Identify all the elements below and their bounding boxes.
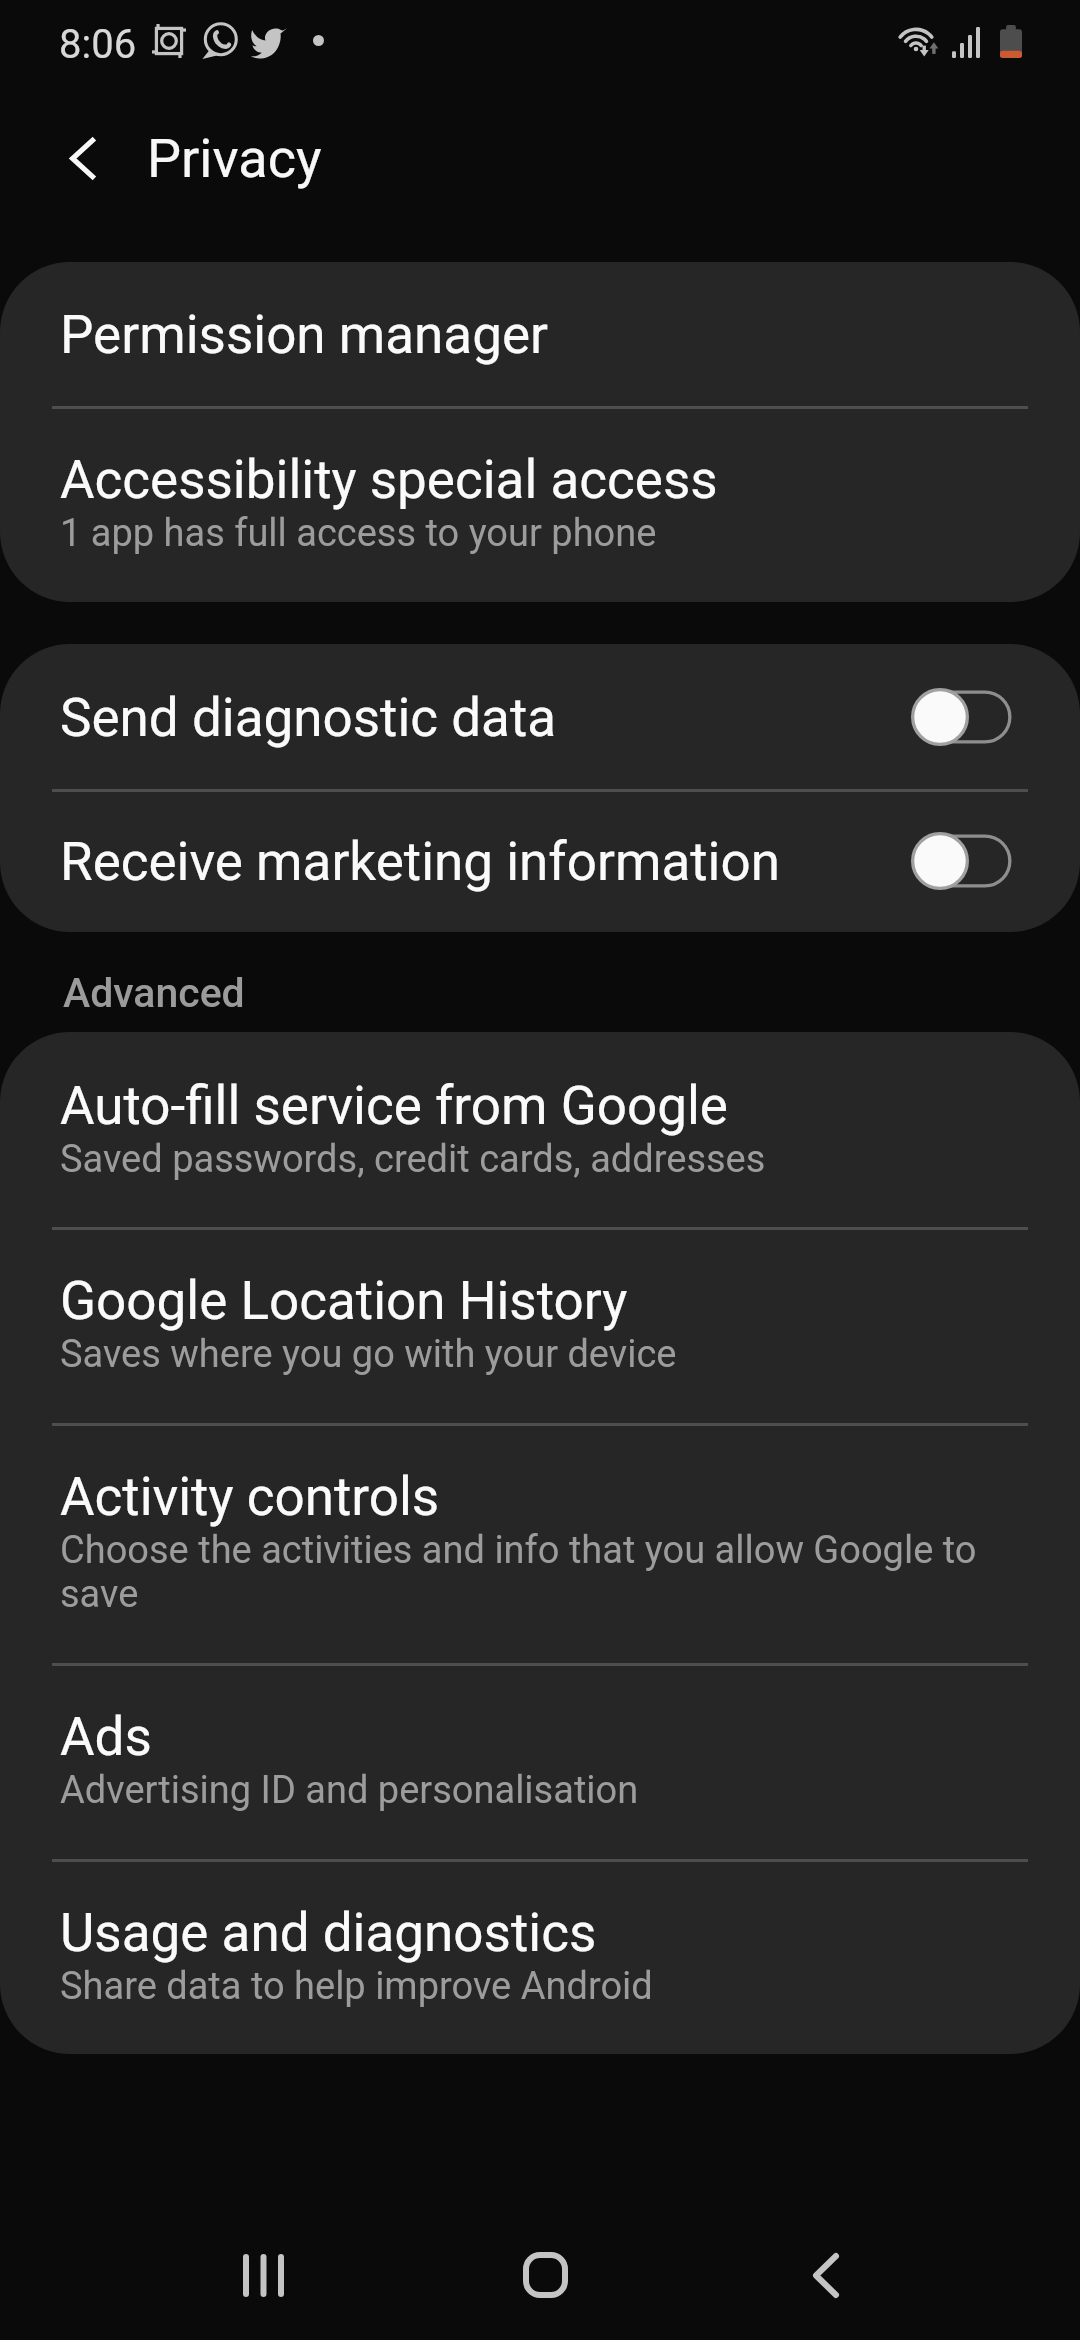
button[interactable]: Usage and diagnostics bbox=[0, 1859, 1080, 2054]
staticText: Usage and diagnostics bbox=[60, 1900, 597, 1964]
staticText: Send diagnostic data bbox=[60, 685, 911, 749]
button[interactable]: Google Location History bbox=[0, 1227, 1080, 1423]
button[interactable]: Ads bbox=[0, 1663, 1080, 1859]
staticText: 1 app has full access to your phone bbox=[60, 511, 657, 555]
button[interactable]: Auto-fill service from Google bbox=[0, 1032, 1080, 1227]
staticText: Google Location History bbox=[60, 1268, 628, 1332]
button[interactable]: Back bbox=[0, 88, 140, 228]
staticText: Saved passwords, credit cards, addresses bbox=[60, 1137, 766, 1181]
staticText: Choose the activities and info that you … bbox=[60, 1528, 1030, 1616]
staticText: Advertising ID and personalisation bbox=[60, 1768, 639, 1812]
button[interactable]: Home bbox=[485, 2215, 605, 2335]
staticText: Advanced bbox=[63, 969, 245, 1017]
staticText: Privacy bbox=[147, 127, 322, 190]
button[interactable]: Permission manager bbox=[0, 262, 1080, 406]
staticText: 8:06 bbox=[59, 21, 137, 68]
button[interactable]: Recent apps bbox=[203, 2215, 323, 2335]
staticText: Share data to help improve Android bbox=[60, 1964, 653, 2008]
staticText: Receive marketing information bbox=[60, 829, 911, 893]
staticText: Activity controls bbox=[60, 1464, 440, 1528]
staticText: Ads bbox=[60, 1704, 152, 1768]
button[interactable]: Send diagnostic data bbox=[0, 644, 1080, 789]
button[interactable]: Receive marketing information bbox=[0, 789, 1080, 932]
button[interactable]: Accessibility special access bbox=[0, 406, 1080, 602]
staticText: Auto-fill service from Google bbox=[60, 1073, 728, 1137]
button[interactable]: Activity controls bbox=[0, 1423, 1080, 1663]
staticText: Saves where you go with your device bbox=[60, 1332, 677, 1376]
staticText: Accessibility special access bbox=[60, 447, 718, 511]
staticText: Permission manager bbox=[60, 302, 548, 366]
button[interactable]: Back bbox=[766, 2215, 886, 2335]
